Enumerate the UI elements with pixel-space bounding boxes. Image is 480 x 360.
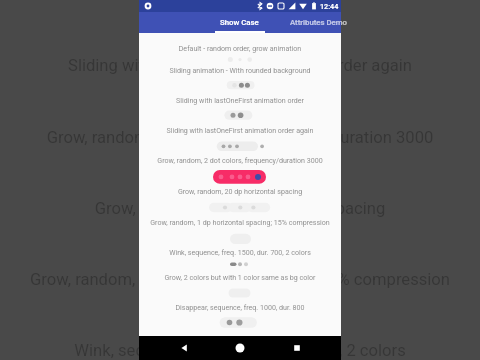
staticText: Grow, random, 20 dp horizontal spacing [139, 187, 341, 195]
button[interactable]: Home [228, 336, 252, 360]
staticText: Grow, random, 2 dot colors, frequency/du… [0, 128, 480, 147]
staticText: 12:44 [320, 2, 339, 10]
staticText: Sliding with lastOneFirst animation orde… [139, 126, 341, 134]
button[interactable]: Back [172, 336, 196, 360]
staticText: Sliding with lastOneFirst animation orde… [0, 56, 480, 75]
button[interactable]: Attributes Demo [279, 12, 358, 33]
staticText: Show Case [220, 18, 259, 27]
staticText: Sliding animation - With rounded backgro… [139, 66, 341, 74]
staticText: Grow, random, 2 dot colors, frequency/du… [139, 156, 341, 164]
staticText: Wink, sequence, freq. 1500, dur. 700, 2 … [0, 341, 480, 360]
staticText: Wink, sequence, freq. 1500, dur. 700, 2 … [139, 248, 341, 256]
staticText: Default - random order, grow animation [139, 44, 341, 52]
button[interactable]: Recents [285, 336, 309, 360]
staticText: Sliding with lastOneFirst animation orde… [139, 96, 341, 104]
staticText: Disappear, sequence, freq. 1000, dur. 80… [139, 303, 341, 311]
staticText: Grow, 2 colors but with 1 color same as … [139, 273, 341, 281]
button[interactable]: Show Case [200, 12, 279, 33]
staticText: Grow, random, 1 dp horizontal spacing; 1… [139, 218, 341, 226]
staticText: Attributes Demo [290, 18, 347, 27]
staticText: Grow, random, 1 dp horizontal spacing; 1… [0, 270, 480, 289]
staticText: Grow, random, 20 dp horizontal spacing [0, 199, 480, 218]
